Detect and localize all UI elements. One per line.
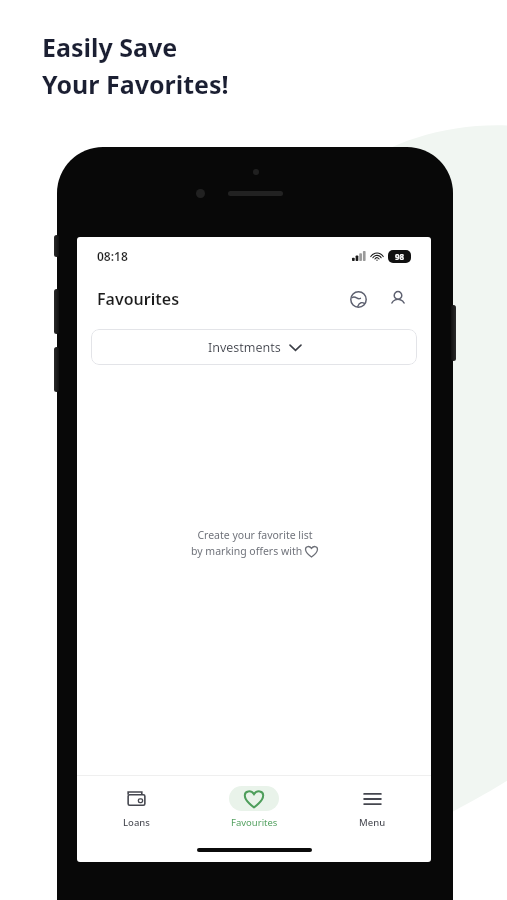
staticText: by marking offers with: [191, 544, 305, 558]
button[interactable]: Favourites: [195, 776, 313, 838]
staticText: Easily Save: [42, 30, 178, 64]
staticText: Your Favorites!: [42, 67, 229, 101]
staticText: Menu: [359, 816, 386, 829]
staticText: 08:18: [97, 248, 128, 264]
button[interactable]: Investments: [91, 329, 417, 365]
staticText: Create your favorite list: [197, 528, 313, 542]
staticText: Investments: [208, 339, 281, 356]
button[interactable]: Loans: [77, 776, 195, 838]
button[interactable]: Menu: [313, 776, 431, 838]
staticText: Favourites: [231, 816, 278, 829]
button[interactable]: Language: [343, 284, 373, 314]
button[interactable]: Profile: [383, 284, 413, 314]
staticText: Loans: [123, 816, 150, 829]
staticText: 98: [395, 251, 405, 262]
staticText: Favourites: [97, 288, 180, 310]
